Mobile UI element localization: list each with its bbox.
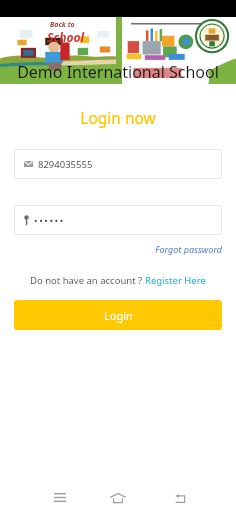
staticText: Do not have an account ? (30, 274, 145, 287)
button[interactable]: Back (160, 484, 200, 512)
button[interactable]: 8294035555 (24, 149, 222, 179)
staticText: 8294035555 (38, 158, 93, 171)
staticText: • • • • • • (34, 214, 64, 227)
staticText: School (47, 29, 85, 45)
staticText: Back to (50, 20, 75, 30)
staticText: Demo International School (0, 61, 236, 83)
staticText: Login now (0, 107, 236, 128)
button[interactable]: Recent apps (40, 482, 80, 512)
button[interactable]: • • • • • • (24, 205, 222, 235)
button[interactable]: Home (98, 483, 138, 512)
button[interactable]: Forgot password (0, 243, 222, 255)
button[interactable]: Register Here (145, 274, 206, 287)
staticText: Login (104, 308, 133, 323)
button[interactable]: Login (14, 300, 222, 330)
